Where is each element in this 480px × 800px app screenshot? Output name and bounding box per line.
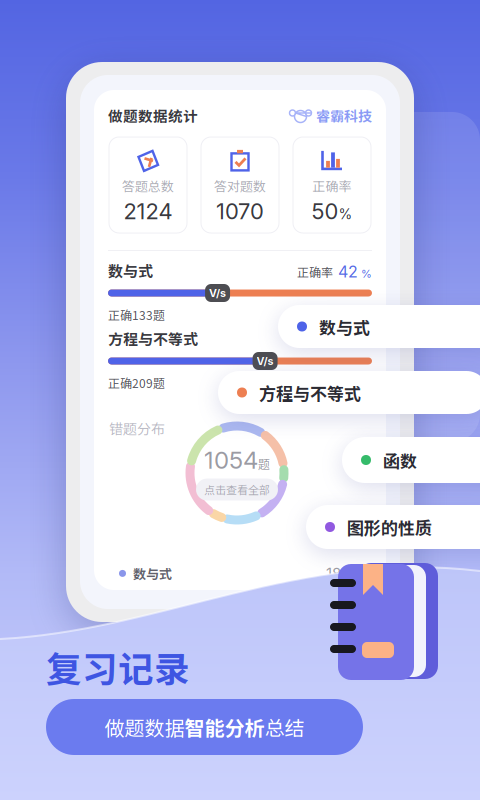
staticText: 50 bbox=[311, 198, 338, 225]
staticText: 正确率 bbox=[297, 331, 333, 348]
button[interactable]: 点击查看全部 bbox=[196, 479, 278, 500]
staticText: 正确率 bbox=[297, 263, 333, 280]
staticText: 42 bbox=[333, 262, 358, 281]
staticText: 2124 bbox=[123, 198, 172, 225]
staticText: 答题总数 bbox=[122, 176, 174, 195]
staticText: 题 bbox=[350, 565, 363, 581]
staticText: 做题数据统计 bbox=[108, 105, 198, 126]
staticText: 正确209题 bbox=[108, 374, 165, 391]
staticText: 60 bbox=[333, 330, 358, 349]
button[interactable]: 图形的性质 bbox=[306, 505, 480, 549]
staticText: 1054 bbox=[204, 445, 258, 474]
staticText: % bbox=[338, 206, 352, 223]
staticText: 1070 bbox=[216, 198, 264, 225]
button[interactable]: 做题数据 bbox=[46, 699, 363, 755]
staticText: V/s bbox=[257, 354, 274, 367]
button[interactable]: 函数 bbox=[342, 437, 480, 483]
staticText: 数与式 bbox=[133, 564, 172, 583]
button[interactable]: 答对题数 bbox=[201, 137, 279, 233]
staticText: 错题分布 bbox=[109, 418, 165, 438]
staticText: 正确率 bbox=[312, 176, 351, 195]
staticText: 复习记录 bbox=[46, 641, 190, 692]
staticText: 数与式 bbox=[108, 260, 153, 281]
button[interactable]: 方程与不等式 bbox=[218, 371, 480, 414]
staticText: 函数 bbox=[383, 448, 417, 472]
staticText: % bbox=[358, 267, 372, 280]
staticText: 睿霸科技 bbox=[316, 105, 372, 126]
button[interactable]: 答题总数 bbox=[109, 137, 187, 233]
staticText: V/s bbox=[209, 286, 226, 299]
staticText: 方程与不等式 bbox=[259, 380, 361, 405]
staticText: 方程与不等式 bbox=[108, 328, 198, 349]
staticText: 183 bbox=[326, 564, 350, 582]
staticText: % bbox=[358, 335, 372, 348]
button[interactable]: 数与式 bbox=[278, 305, 480, 348]
staticText: 正确133题 bbox=[108, 306, 165, 323]
staticText: 总结 bbox=[264, 712, 304, 741]
staticText: 图形的性质 bbox=[347, 515, 432, 539]
button[interactable]: 正确率 bbox=[293, 137, 371, 233]
staticText: 智能分析 bbox=[184, 712, 264, 741]
staticText: 数与式 bbox=[319, 314, 370, 339]
staticText: 题 bbox=[258, 455, 270, 473]
staticText: 点击查看全部 bbox=[204, 482, 270, 497]
staticText: 做题数据 bbox=[104, 712, 184, 741]
staticText: 答对题数 bbox=[214, 176, 266, 195]
